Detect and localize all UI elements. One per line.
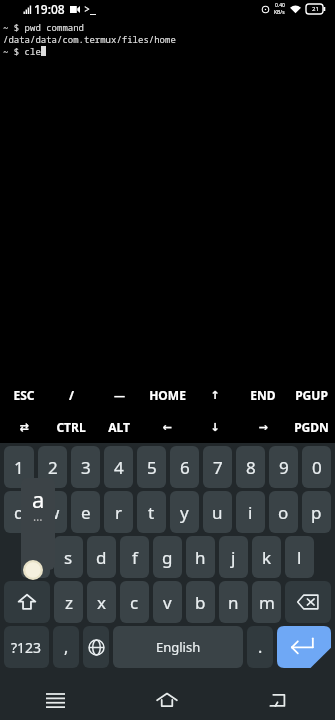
button[interactable]: i [236, 491, 265, 533]
button[interactable]: , [53, 626, 79, 668]
button[interactable]: PGUP [287, 379, 335, 411]
button[interactable]: HOME [143, 379, 191, 411]
button[interactable]: Change language [83, 626, 109, 668]
staticText: a [32, 484, 45, 514]
button[interactable]: 8 [236, 446, 265, 488]
button[interactable]: Home [111, 680, 223, 720]
button[interactable]: ESC [0, 379, 47, 411]
button[interactable]: c [120, 581, 149, 623]
staticText: y [180, 501, 189, 524]
button[interactable]: Recents [0, 680, 111, 720]
button[interactable]: p [302, 491, 331, 533]
staticText: k [262, 546, 272, 569]
staticText: s [64, 546, 73, 569]
button[interactable]: f [120, 536, 149, 578]
button[interactable]: ALT [95, 411, 143, 443]
button[interactable]: ?123 [4, 626, 49, 668]
button[interactable]: 6 [170, 446, 199, 488]
button[interactable]: → [239, 411, 287, 443]
staticText: 9 [279, 456, 289, 479]
staticText: , [64, 636, 69, 658]
button[interactable]: Enter [277, 626, 331, 668]
button[interactable]: t [137, 491, 166, 533]
button[interactable]: j [219, 536, 248, 578]
button[interactable]: / [47, 379, 95, 411]
staticText: 19:08 [34, 1, 65, 17]
button[interactable]: English [113, 626, 243, 668]
button[interactable]: o [269, 491, 298, 533]
staticText: PGDN [294, 419, 329, 435]
button[interactable]: PGDN [287, 411, 335, 443]
staticText: c [130, 591, 139, 614]
staticText: HOME [149, 387, 186, 403]
button[interactable]: END [239, 379, 287, 411]
button[interactable]: n [219, 581, 248, 623]
button[interactable]: k [252, 536, 281, 578]
staticText: n [228, 591, 239, 614]
button[interactable]: 7 [203, 446, 232, 488]
button[interactable]: b [186, 581, 215, 623]
staticText: 8 [246, 456, 256, 479]
staticText: o [278, 501, 289, 524]
button[interactable]: CTRL [47, 411, 95, 443]
staticText: PGUP [295, 387, 328, 403]
staticText: a [31, 546, 41, 569]
button[interactable]: x [87, 581, 116, 623]
staticText: d [96, 546, 107, 569]
button[interactable]: 3 [71, 446, 100, 488]
staticText: q [14, 501, 25, 524]
staticText: j [231, 546, 236, 569]
button[interactable]: Back [223, 680, 335, 720]
staticText: END [250, 387, 276, 403]
staticText: ?123 [11, 638, 42, 657]
button[interactable]: Backspace [285, 581, 331, 623]
button[interactable]: ↓ [191, 411, 239, 443]
button[interactable]: . [247, 626, 273, 668]
staticText: 6 [180, 456, 190, 479]
button[interactable]: e [71, 491, 100, 533]
button[interactable]: g [153, 536, 182, 578]
button[interactable]: 2 [38, 446, 67, 488]
staticText: . [258, 636, 263, 658]
staticText: → [258, 421, 268, 434]
button[interactable]: m [252, 581, 281, 623]
staticText: v [163, 591, 172, 614]
button[interactable]: Shift [4, 581, 50, 623]
button[interactable]: ⇄ [0, 411, 47, 443]
staticText: ESC [13, 387, 35, 403]
staticText: ↑ [210, 389, 220, 402]
staticText: English [156, 638, 201, 656]
button[interactable]: 4 [104, 446, 133, 488]
staticText: ⇄ [19, 421, 29, 434]
button[interactable]: s [54, 536, 83, 578]
staticText: … [33, 508, 43, 524]
button[interactable]: — [95, 379, 143, 411]
staticText: ALT [108, 419, 130, 435]
button[interactable]: d [87, 536, 116, 578]
staticText: ↓ [210, 421, 220, 434]
button[interactable]: w [38, 491, 67, 533]
staticText: x [97, 591, 106, 614]
button[interactable]: a [21, 536, 50, 578]
button[interactable]: 0 [302, 446, 331, 488]
staticText: e [81, 501, 91, 524]
button[interactable]: v [153, 581, 182, 623]
button[interactable]: ← [143, 411, 191, 443]
button[interactable]: y [170, 491, 199, 533]
button[interactable]: h [186, 536, 215, 578]
staticText: ~ $ pwd command [3, 21, 85, 33]
staticText: KB/s [274, 9, 285, 16]
button[interactable]: ↑ [191, 379, 239, 411]
button[interactable]: z [54, 581, 83, 623]
staticText: 3 [81, 456, 91, 479]
staticText: 4 [114, 456, 124, 479]
button[interactable]: u [203, 491, 232, 533]
staticText: CTRL [56, 419, 86, 435]
button[interactable]: q [4, 491, 34, 533]
button[interactable]: l [285, 536, 314, 578]
button[interactable]: r [104, 491, 133, 533]
staticText: b [195, 591, 206, 614]
button[interactable]: 5 [137, 446, 166, 488]
button[interactable]: 9 [269, 446, 298, 488]
button[interactable]: 1 [4, 446, 34, 488]
